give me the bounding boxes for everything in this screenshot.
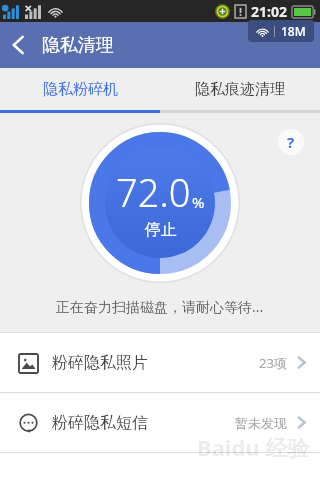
staticText: %: [192, 192, 205, 212]
staticText: 隐私粉碎机: [43, 80, 118, 99]
staticText: 粉碎隐私照片: [52, 353, 259, 373]
button[interactable]: Network speed: [248, 20, 314, 42]
staticText: ?: [287, 132, 295, 152]
staticText: 粉碎隐私短信: [52, 413, 235, 433]
staticText: 23项: [259, 354, 287, 372]
staticText: 隐私痕迹清理: [195, 80, 285, 99]
staticText: 暂未发现: [235, 415, 287, 431]
staticText: 隐私清理: [42, 34, 114, 57]
button[interactable]: Back: [0, 28, 39, 62]
button[interactable]: 隐私粉碎机: [0, 68, 160, 110]
staticText: 停止: [145, 220, 177, 240]
button[interactable]: 粉碎隐私照片: [0, 333, 320, 392]
staticText: 21:02: [251, 2, 287, 21]
staticText: 正在奋力扫描磁盘，请耐心等待...: [56, 297, 264, 316]
button[interactable]: Help: [278, 129, 304, 155]
staticText: 18M: [281, 23, 306, 39]
staticText: 72.0: [116, 166, 191, 218]
button[interactable]: 粉碎隐私短信: [0, 393, 320, 452]
button[interactable]: 隐私痕迹清理: [160, 68, 320, 110]
staticText: Baidu 经验: [197, 432, 310, 462]
